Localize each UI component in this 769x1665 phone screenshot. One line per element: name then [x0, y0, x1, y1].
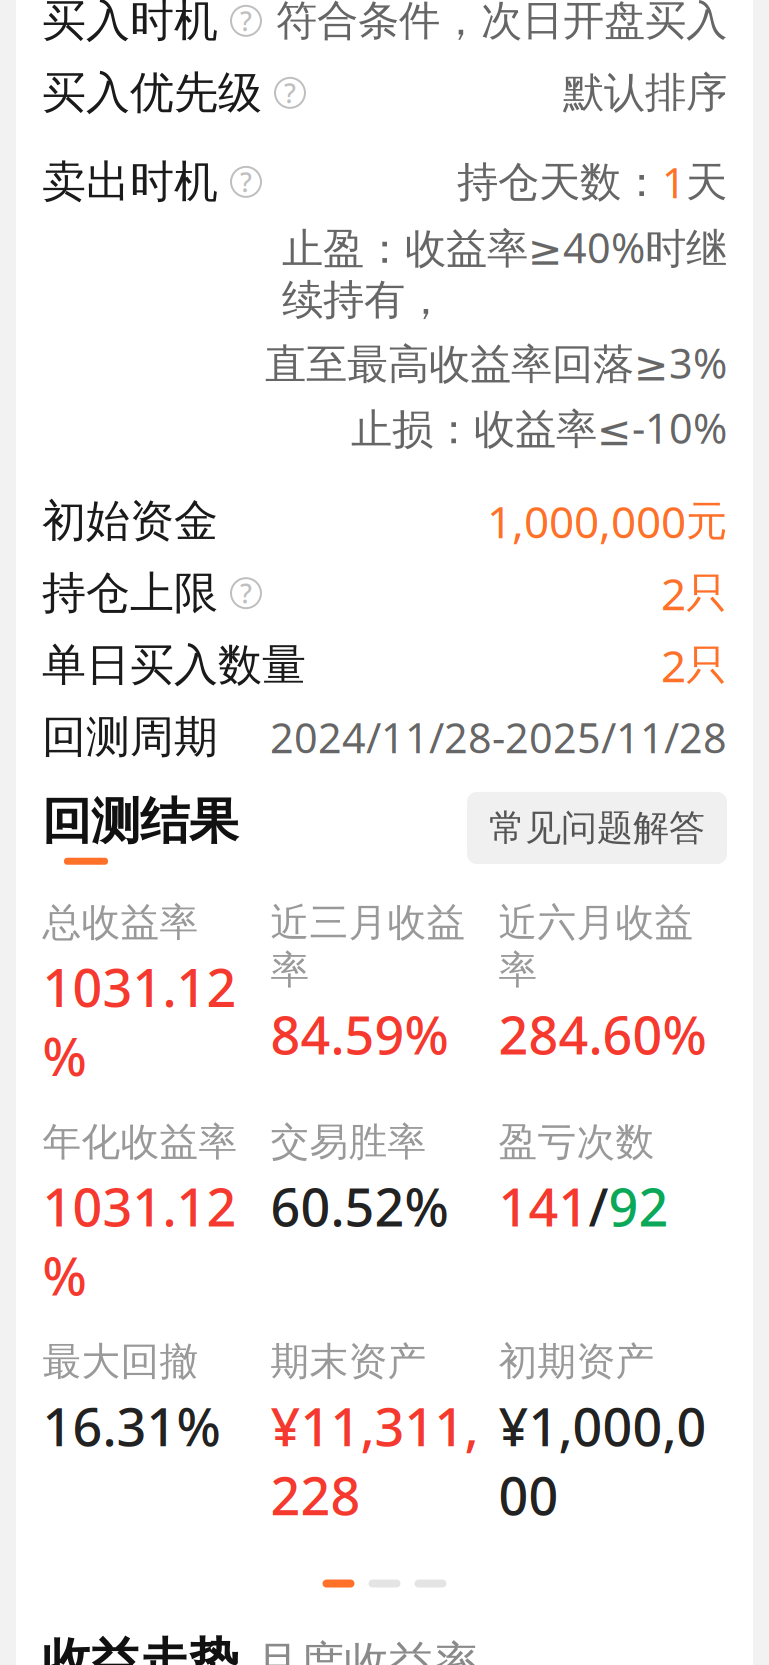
staticText: 直至最高收益率回落≥3%	[265, 335, 727, 390]
button[interactable]: 月度收益率	[254, 1635, 479, 1665]
staticText: 卖出时机	[42, 155, 218, 209]
staticText: 16.31%	[42, 1391, 220, 1461]
staticText: 回测周期	[42, 710, 218, 764]
staticText: 止盈：收益率≥40%时继续持有，	[282, 220, 727, 325]
staticText: 初期资产	[498, 1338, 654, 1385]
staticText: ¥1,000,000	[498, 1391, 706, 1530]
staticText: ?	[284, 75, 296, 110]
staticText: 最大回撤	[42, 1338, 198, 1385]
staticText: 持仓上限	[42, 566, 218, 620]
staticText: /	[588, 1172, 608, 1241]
staticText: 符合条件，次日开盘买入	[276, 0, 727, 46]
staticText: ?	[240, 575, 252, 611]
staticText: 回测结果	[42, 791, 238, 852]
staticText: 年化收益率	[42, 1118, 237, 1166]
staticText: 92	[608, 1172, 668, 1241]
staticText: 近三月收益率	[270, 899, 465, 994]
staticText: 单日买入数量	[42, 638, 306, 692]
staticText: 2	[661, 636, 686, 694]
staticText: 84.59%	[270, 1000, 448, 1069]
staticText: ¥11,311,228	[270, 1391, 478, 1530]
staticText: 交易胜率	[270, 1118, 426, 1166]
staticText: ?	[240, 3, 252, 38]
staticText: 默认排序	[563, 67, 727, 118]
staticText: 只	[686, 568, 727, 619]
staticText: 止损：收益率≤-10%	[351, 400, 727, 455]
staticText: 2	[661, 564, 686, 622]
staticText: 总收益率	[42, 899, 198, 946]
staticText: 1031.12%	[42, 952, 236, 1090]
staticText: 只	[686, 640, 727, 691]
staticText: 1	[662, 155, 686, 210]
staticText: ?	[240, 164, 252, 200]
staticText: 284.60%	[498, 1000, 706, 1069]
staticText: 期末资产	[270, 1338, 426, 1385]
staticText: 天	[686, 157, 727, 208]
staticText: 1031.12%	[42, 1172, 236, 1310]
staticText: 2024/11/28-2025/11/28	[270, 710, 727, 765]
staticText: 元	[686, 496, 727, 547]
staticText: 60.52%	[270, 1172, 448, 1241]
button[interactable]: 常见问题解答	[467, 792, 727, 864]
staticText: 持仓天数：	[457, 157, 662, 208]
staticText: 收益走势	[42, 1632, 238, 1665]
staticText: 近六月收益率	[498, 899, 693, 994]
staticText: 月度收益率	[254, 1635, 479, 1665]
staticText: 1,000,000	[487, 492, 686, 550]
staticText: 买入时机	[42, 0, 218, 48]
staticText: 买入优先级	[42, 66, 262, 120]
staticText: 141	[498, 1172, 588, 1241]
staticText: 常见问题解答	[489, 806, 705, 850]
staticText: 初始资金	[42, 494, 218, 548]
staticText: 盈亏次数	[498, 1118, 654, 1166]
